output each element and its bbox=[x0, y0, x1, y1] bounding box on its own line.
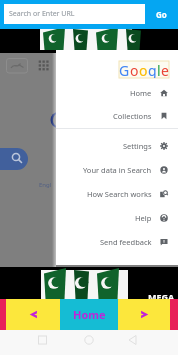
staticText: Settings bbox=[123, 141, 152, 151]
staticText: o bbox=[139, 61, 148, 78]
button[interactable]: Help bbox=[56, 206, 178, 230]
button[interactable]: Back bbox=[6, 299, 60, 330]
staticText: Home bbox=[73, 307, 106, 322]
button[interactable]: Home bbox=[56, 81, 178, 104]
staticText: g bbox=[148, 61, 157, 78]
staticText: e bbox=[161, 61, 169, 78]
button[interactable]: Search or Enter URL bbox=[4, 4, 145, 24]
staticText: Send feedback bbox=[100, 237, 152, 247]
button[interactable]: G bbox=[119, 61, 169, 78]
staticText: Go bbox=[156, 9, 167, 20]
staticText: l bbox=[157, 61, 161, 78]
button[interactable]: Go bbox=[145, 0, 178, 29]
staticText: How Search works bbox=[87, 189, 152, 199]
staticText: Home bbox=[130, 88, 152, 98]
staticText: Engl bbox=[39, 181, 52, 189]
button[interactable]: Send feedback bbox=[56, 230, 178, 254]
button[interactable]: Home bbox=[60, 299, 118, 330]
staticText: Your data in Search bbox=[83, 165, 152, 175]
staticText: G bbox=[119, 61, 130, 78]
staticText: MEGA bbox=[148, 291, 175, 303]
staticText: Help bbox=[135, 213, 152, 223]
button[interactable]: Forward bbox=[118, 299, 170, 330]
staticText: o bbox=[130, 61, 139, 78]
button[interactable]: How Search works bbox=[56, 182, 178, 206]
staticText: Collections bbox=[113, 111, 152, 121]
button[interactable]: Collections bbox=[56, 104, 178, 127]
button[interactable]: Settings bbox=[56, 134, 178, 158]
staticText: Search or Enter URL bbox=[9, 9, 75, 19]
button[interactable]: Your data in Search bbox=[56, 158, 178, 182]
